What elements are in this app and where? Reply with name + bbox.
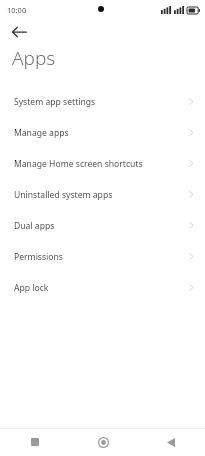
staticText: Manage apps [14,127,188,139]
button[interactable]: Permissions [0,241,205,272]
staticText: Apps [12,45,56,71]
staticText: Uninstalled system apps [14,189,188,201]
button[interactable]: Back [137,428,205,456]
button[interactable]: System app settings [0,86,205,117]
staticText: 10:00 [7,5,27,15]
button[interactable]: Manage apps [0,117,205,148]
staticText: Manage Home screen shortcuts [14,158,188,170]
button[interactable]: Dual apps [0,210,205,241]
staticText: System app settings [14,96,188,108]
staticText: Permissions [14,251,188,263]
button[interactable]: App lock [0,272,205,303]
button[interactable]: Recent apps [0,428,69,456]
button[interactable]: Home [69,428,137,456]
staticText: App lock [14,282,188,294]
button[interactable]: Manage Home screen shortcuts [0,148,205,179]
button[interactable]: Uninstalled system apps [0,179,205,210]
button[interactable]: Back [6,20,32,44]
staticText: Dual apps [14,220,188,232]
